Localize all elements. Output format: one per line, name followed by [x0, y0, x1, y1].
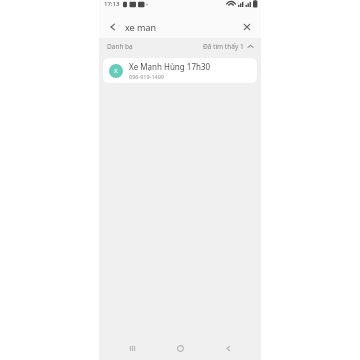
staticText: Danh bạ: [107, 42, 133, 51]
staticText: xe man: [125, 21, 239, 33]
button[interactable]: X: [103, 58, 257, 83]
button[interactable]: Đã tìm thấy 1: [203, 42, 254, 51]
button[interactable]: Home: [165, 336, 195, 360]
staticText: 096-919-1499: [129, 73, 165, 80]
staticText: 17:13: [104, 0, 120, 8]
staticText: X: [114, 67, 118, 75]
button[interactable]: Back: [213, 336, 243, 360]
button[interactable]: Clear search: [239, 19, 255, 35]
staticText: Xe Mạnh Hùng 17h30: [129, 61, 211, 72]
staticText: Đã tìm thấy 1: [203, 42, 244, 51]
button[interactable]: Back: [105, 19, 121, 35]
button[interactable]: Recents: [117, 336, 147, 360]
